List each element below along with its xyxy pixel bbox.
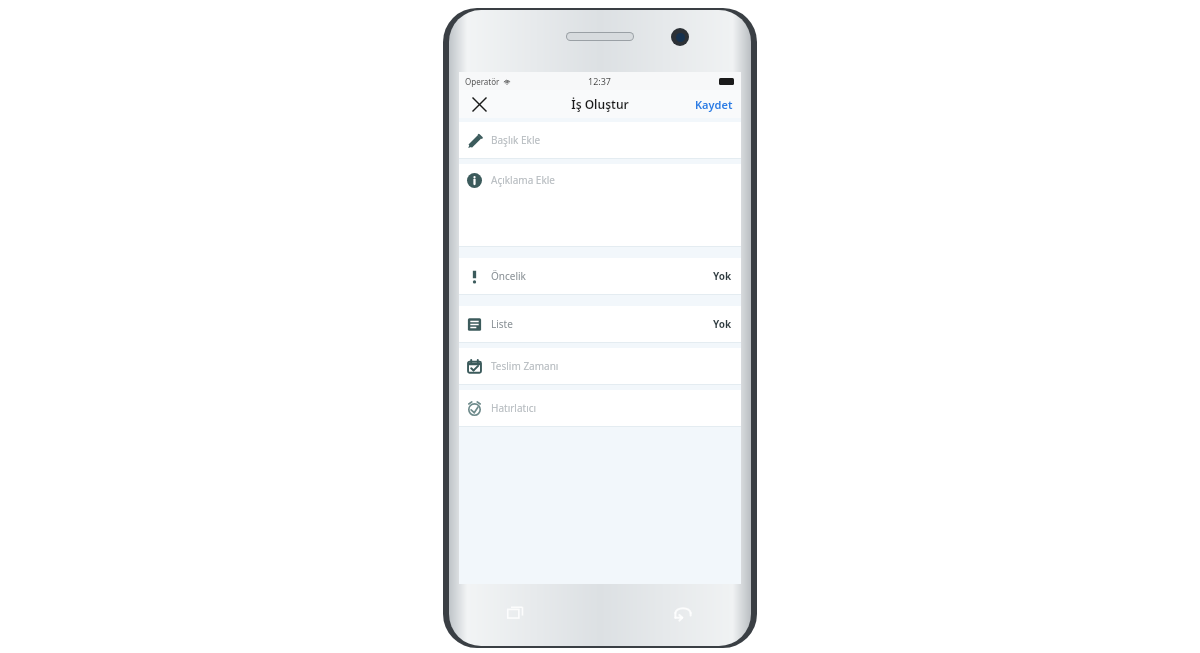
staticText: Yok [713, 317, 732, 331]
button[interactable]: Teslim Zamanı [459, 348, 741, 384]
button[interactable]: Başlık Ekle [459, 122, 741, 158]
staticText: Operatör [465, 76, 500, 87]
button[interactable]: Kapat [467, 92, 491, 116]
staticText: Kaydet [695, 97, 733, 112]
button[interactable]: Öncelik [459, 258, 741, 294]
button[interactable]: Kaydet [693, 93, 735, 116]
button[interactable]: Liste [459, 306, 741, 342]
button[interactable]: Hatırlatıcı [459, 390, 741, 426]
staticText: Başlık Ekle [491, 133, 541, 147]
staticText: Açıklama Ekle [491, 173, 555, 187]
staticText: Hatırlatıcı [491, 401, 537, 415]
staticText: Öncelik [491, 269, 526, 283]
staticText: İş Oluştur [571, 96, 629, 112]
staticText: 12:37 [588, 75, 612, 87]
staticText: Liste [491, 317, 513, 331]
staticText: Teslim Zamanı [491, 359, 559, 373]
button[interactable]: Açıklama Ekle [459, 164, 741, 246]
staticText: Yok [713, 269, 732, 283]
